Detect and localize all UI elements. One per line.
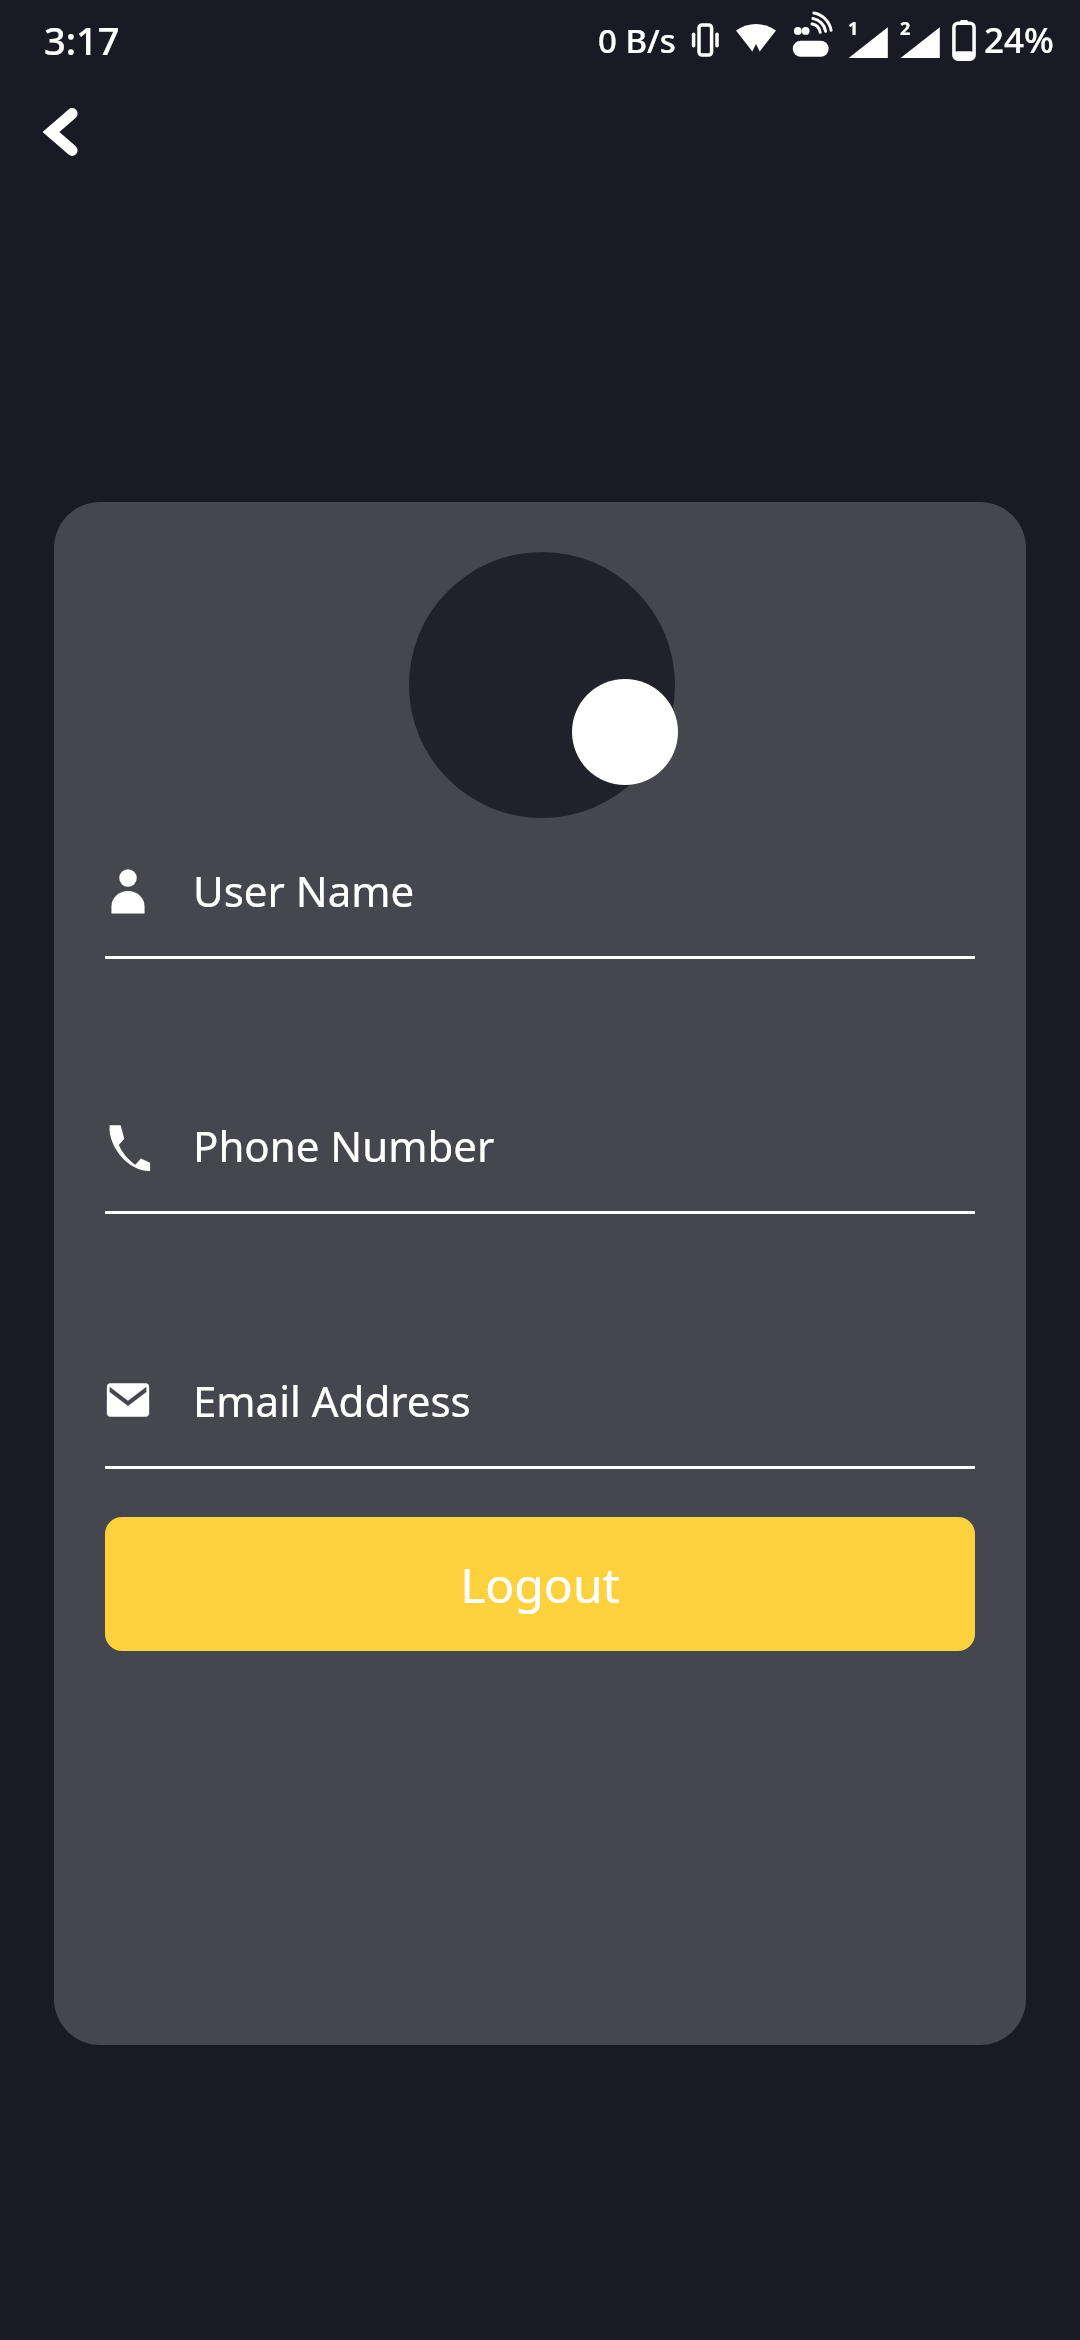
staticText: 2 [900, 16, 911, 41]
button[interactable]: Back [18, 88, 106, 176]
button[interactable]: Logout [105, 1517, 975, 1651]
staticText: 24% [984, 16, 1054, 64]
staticText: 1 [848, 16, 859, 41]
button[interactable]: Email Address [105, 1364, 975, 1469]
staticText: 3:17 [44, 14, 120, 66]
staticText: 0 B/s [598, 18, 676, 63]
staticText: Email Address [193, 1372, 471, 1429]
button[interactable]: User Name [105, 854, 975, 959]
staticText: Logout [460, 1552, 620, 1617]
button[interactable]: Phone Number [105, 1109, 975, 1214]
staticText: User Name [193, 862, 415, 919]
staticText: Phone Number [193, 1117, 495, 1174]
